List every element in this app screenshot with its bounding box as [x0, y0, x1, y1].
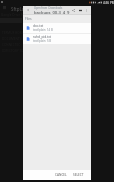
- staticText: Files: [25, 17, 32, 21]
- button[interactable]: CANCEL: [54, 172, 68, 178]
- button[interactable]: SELECT: [72, 172, 85, 178]
- staticText: text/plain 5 B: [33, 39, 52, 43]
- staticText: doc.txt: [33, 24, 44, 28]
- staticText: TERMUX HOME: [2, 31, 25, 35]
- staticText: 4:36 PM: [103, 1, 114, 5]
- button[interactable]: Share: [70, 7, 76, 13]
- staticText: backups_00-3_4_9_33_28: [34, 10, 70, 14]
- button[interactable]: More options: [83, 7, 89, 13]
- button[interactable]: sshd_pid.txt: [23, 34, 91, 44]
- staticText: SELECT: [73, 173, 84, 177]
- staticText: sshd_pid.txt: [33, 35, 51, 39]
- button[interactable]: doc.txt: [23, 23, 91, 33]
- staticText: text/plain 14 B: [33, 28, 53, 32]
- staticText: CANCEL: [55, 173, 67, 177]
- button[interactable]: Open navigation drawer: [2, 5, 7, 10]
- staticText: SftpLog: [11, 6, 28, 12]
- staticText: DIRECTORY TOP LE: [2, 49, 30, 53]
- button[interactable]: Navigate up: [25, 7, 31, 13]
- button[interactable]: List view: [77, 7, 83, 13]
- staticText: Open from Downloads: [34, 6, 63, 10]
- staticText: Google Drive Storage: [1, 13, 32, 17]
